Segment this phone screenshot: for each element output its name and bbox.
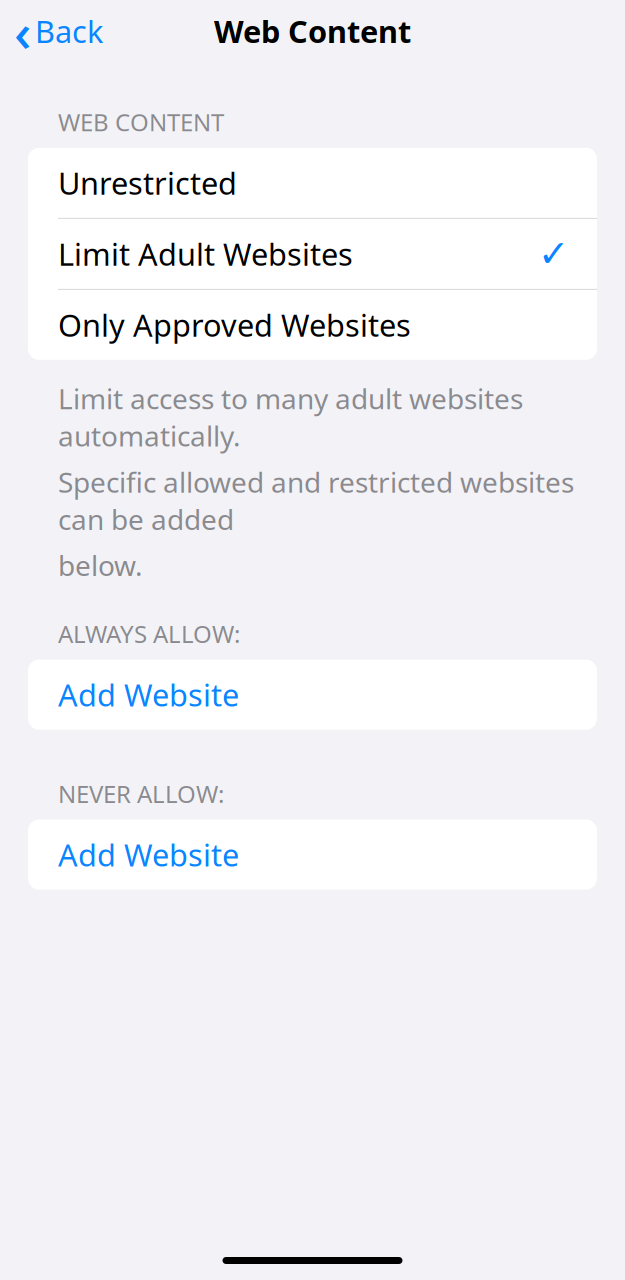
staticText: Back [35, 11, 103, 51]
staticText: Specific allowed and restricted websites… [58, 463, 574, 538]
staticText: ‹ [14, 0, 31, 66]
staticText: WEB CONTENT [58, 106, 224, 138]
staticText: Unrestricted [58, 162, 237, 203]
staticText: Add Website [58, 834, 239, 875]
button[interactable]: Limit Adult Websites [28, 219, 597, 289]
button[interactable]: ‹ [0, 0, 117, 72]
staticText: ALWAYS ALLOW: [58, 618, 240, 650]
staticText: below. [58, 547, 143, 584]
staticText: NEVER ALLOW: [58, 778, 224, 810]
button[interactable]: Add Website [28, 660, 597, 730]
staticText: Limit Adult Websites [58, 233, 353, 274]
button[interactable]: Add Website [28, 819, 597, 889]
button[interactable]: Only Approved Websites [28, 290, 597, 360]
staticText: Only Approved Websites [58, 304, 411, 345]
staticText: Web Content [214, 11, 411, 51]
staticText: Limit access to many adult websites auto… [58, 380, 523, 454]
staticText: ✓ [538, 233, 569, 275]
staticText: Add Website [58, 674, 239, 715]
button[interactable]: Unrestricted [28, 148, 597, 218]
